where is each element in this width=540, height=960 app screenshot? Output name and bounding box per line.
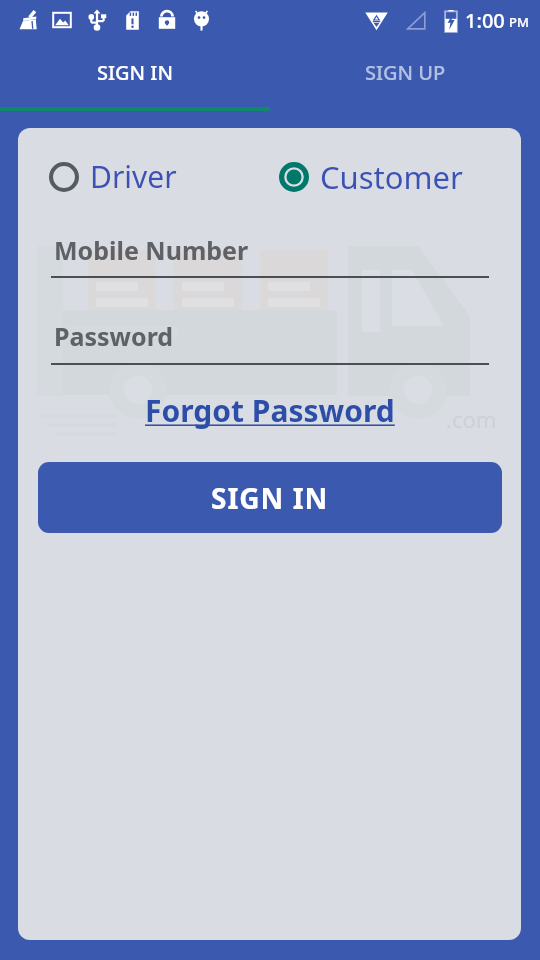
staticText: SIGN UP <box>365 59 446 86</box>
staticText: SIGN IN <box>211 479 329 517</box>
button[interactable]: Customer <box>279 156 463 198</box>
other: SD card <box>122 10 143 31</box>
button[interactable]: SIGN IN <box>0 40 270 110</box>
button[interactable]: SIGN UP <box>270 40 540 110</box>
staticText: Driver <box>90 156 177 197</box>
other: Cleaner <box>16 9 38 31</box>
button[interactable]: Driver <box>49 156 177 197</box>
button[interactable]: Forgot Password <box>145 390 395 431</box>
other: Screenshot <box>52 10 72 30</box>
button[interactable]: SIGN IN <box>38 462 502 533</box>
staticText: Customer <box>320 156 463 198</box>
other: Developer mode <box>191 10 212 31</box>
staticText: 1:00 <box>465 7 505 34</box>
staticText: .com <box>446 404 497 434</box>
staticText: Mobile Number <box>54 233 249 267</box>
other: Secure <box>157 10 177 30</box>
staticText: Forgot Password <box>145 390 395 431</box>
staticText: Password <box>54 319 174 353</box>
staticText: PM <box>509 13 529 31</box>
other: USB connected <box>86 9 108 31</box>
staticText: SIGN IN <box>97 59 173 86</box>
